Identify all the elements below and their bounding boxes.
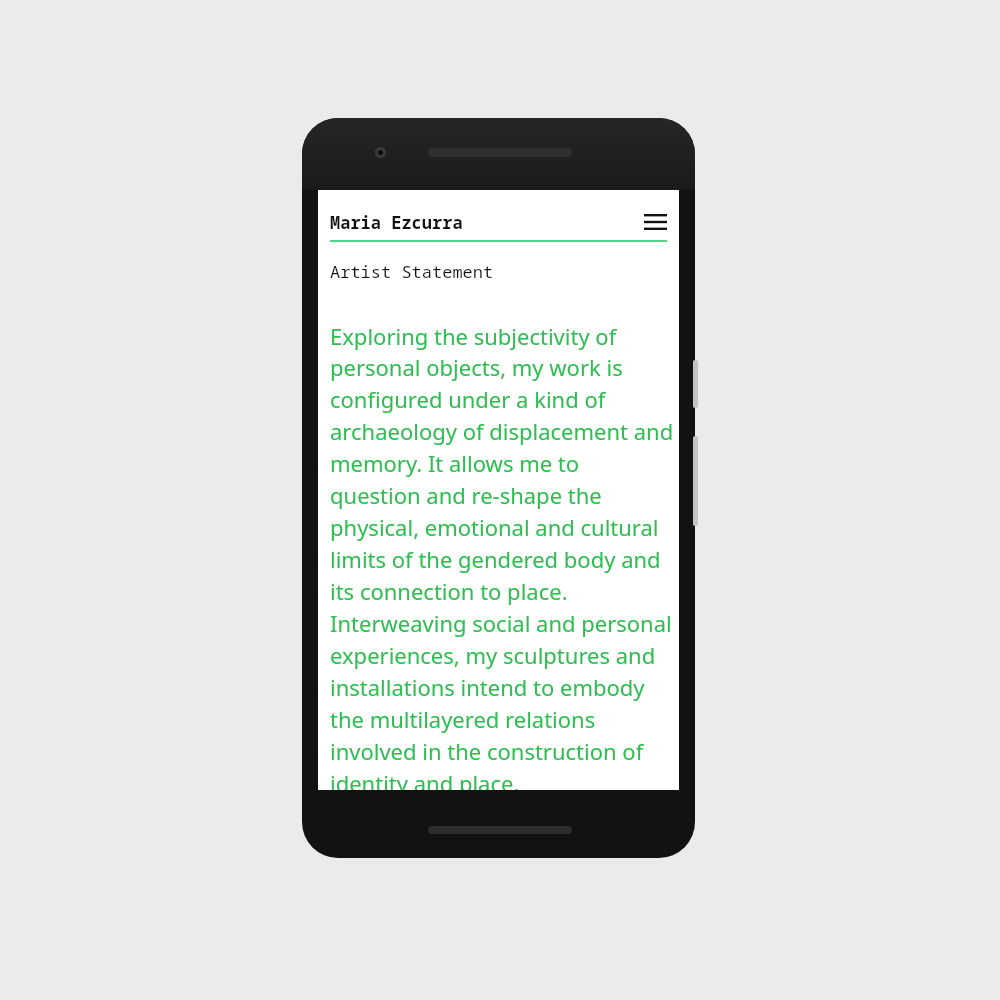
staticText: Maria Ezcurra — [330, 211, 463, 234]
staticText: Exploring the subjectivity of personal o… — [330, 321, 675, 790]
button[interactable]: Artist Statement — [330, 260, 494, 283]
button[interactable]: Maria Ezcurra — [330, 211, 463, 234]
button[interactable]: Open navigation menu — [640, 207, 670, 237]
staticText: Artist Statement — [330, 260, 494, 283]
